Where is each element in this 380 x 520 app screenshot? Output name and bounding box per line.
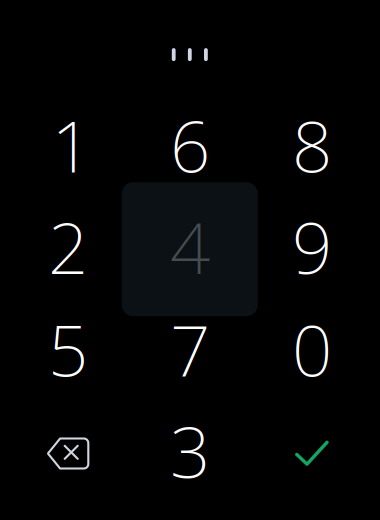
button[interactable]: Confirm <box>253 402 371 500</box>
button[interactable]: 9 <box>253 198 371 296</box>
button[interactable]: 3 <box>131 402 249 500</box>
staticText: 2 <box>48 200 88 294</box>
button[interactable]: 1 <box>9 96 127 194</box>
staticText: 1 <box>51 98 91 192</box>
staticText: 5 <box>48 302 88 396</box>
staticText: 4 <box>170 200 210 294</box>
button[interactable]: 6 <box>131 96 249 194</box>
button[interactable]: 7 <box>131 300 249 398</box>
button[interactable]: Delete <box>9 402 127 500</box>
staticText: 0 <box>292 302 332 396</box>
button[interactable]: 0 <box>253 300 371 398</box>
staticText: 3 <box>170 404 210 498</box>
button[interactable]: 5 <box>9 300 127 398</box>
button[interactable]: 2 <box>9 198 127 296</box>
staticText: 7 <box>170 302 210 396</box>
staticText: 6 <box>170 98 210 192</box>
button[interactable]: 8 <box>253 96 371 194</box>
button[interactable]: 4 <box>131 198 249 296</box>
staticText: 8 <box>292 98 332 192</box>
staticText: 9 <box>292 200 332 294</box>
